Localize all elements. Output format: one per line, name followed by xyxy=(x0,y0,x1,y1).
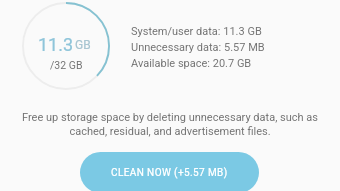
staticText: Available space: 20.7 GB xyxy=(131,57,252,73)
button[interactable]: CLEAN NOW (+5.57 MB) xyxy=(80,152,259,191)
other: Storage used 11.3 GB of 32 GB xyxy=(22,2,110,90)
staticText: CLEAN NOW (+5.57 MB) xyxy=(111,167,228,179)
staticText: 11.3 xyxy=(38,34,74,55)
staticText: Unnecessary data: 5.57 MB xyxy=(131,41,265,57)
staticText: Free up storage space by deleting unnece… xyxy=(15,111,325,137)
staticText: GB xyxy=(75,38,91,52)
staticText: /32 GB xyxy=(50,59,83,71)
staticText: System/user data: 11.3 GB xyxy=(131,25,262,41)
